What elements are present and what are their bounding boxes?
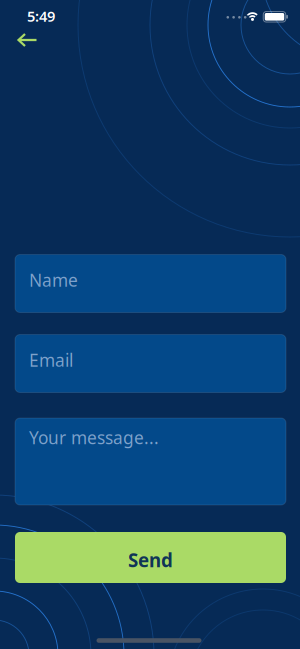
button[interactable]: Your message...	[15, 418, 286, 505]
button[interactable]: Email	[15, 334, 286, 392]
staticText: Send	[128, 548, 173, 572]
button[interactable]: Name	[15, 254, 286, 312]
button[interactable]: Send	[15, 532, 286, 583]
button[interactable]: Back	[14, 28, 40, 52]
staticText: Email	[29, 348, 73, 371]
staticText: Name	[29, 268, 78, 291]
staticText: 5:49	[27, 6, 55, 26]
staticText: Your message...	[29, 426, 159, 449]
